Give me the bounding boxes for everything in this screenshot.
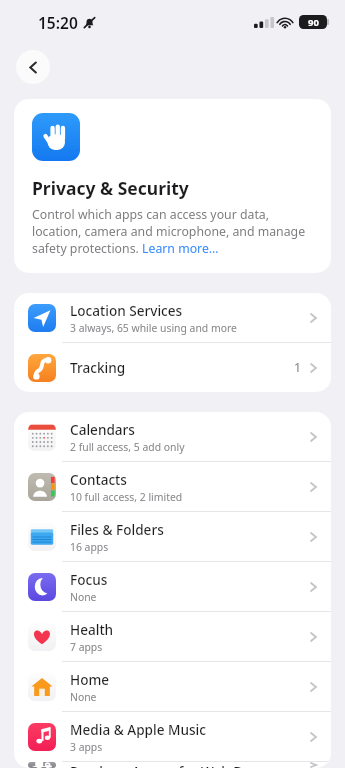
staticText: 7 apps (70, 640, 103, 654)
staticText: 3 apps (70, 740, 103, 754)
staticText: Focus (70, 570, 108, 589)
staticText: Privacy & Security (32, 176, 189, 200)
staticText: Health (70, 620, 114, 639)
staticText: 90 (308, 16, 319, 29)
staticText: Contacts (70, 470, 127, 489)
staticText: Tracking (70, 358, 126, 377)
staticText: 3 always, 65 while using and more (70, 321, 237, 335)
staticText: None (70, 690, 97, 704)
staticText: Location Services (70, 301, 183, 320)
button[interactable]: Home (14, 662, 331, 711)
staticText: 10 full access, 2 limited (70, 490, 183, 504)
staticText: Passkeys Access for Web Browsers (70, 762, 294, 768)
staticText: Control which apps can access your data,… (32, 206, 315, 257)
button[interactable]: Health (14, 612, 331, 661)
button[interactable]: Files & Folders (14, 512, 331, 561)
button[interactable]: Media & Apple Music (14, 712, 331, 761)
button[interactable]: Passkeys Access for Web Browsers (14, 762, 331, 768)
staticText: 1 (294, 359, 302, 376)
staticText: None (70, 590, 97, 604)
staticText: Home (70, 670, 110, 689)
staticText: Files & Folders (70, 520, 164, 539)
button[interactable]: Location Services (14, 293, 331, 342)
button[interactable]: Back (16, 50, 50, 84)
button[interactable]: Focus (14, 562, 331, 611)
staticText: 16 apps (70, 540, 109, 554)
staticText: Media & Apple Music (70, 720, 206, 739)
staticText: Calendars (70, 420, 135, 439)
staticText: 2 full access, 5 add only (70, 440, 185, 454)
staticText: 15:20 (38, 12, 78, 33)
button[interactable]: Contacts (14, 462, 331, 511)
button[interactable]: Tracking (14, 343, 331, 392)
button[interactable]: Calendars (14, 412, 331, 461)
